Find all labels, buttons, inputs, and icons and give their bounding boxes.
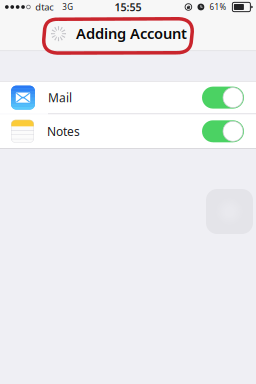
staticText: 3G — [62, 2, 73, 12]
button[interactable]: Mail — [0, 82, 256, 114]
staticText: Mail — [48, 90, 72, 105]
button[interactable]: Mail on — [202, 87, 256, 109]
staticText: Adding Account — [76, 23, 187, 43]
staticText: Notes — [47, 123, 80, 139]
button[interactable]: Notes on — [202, 120, 256, 142]
staticText: 15:55 — [114, 0, 141, 14]
staticText: dtac — [35, 1, 53, 13]
button[interactable]: Notes — [0, 114, 256, 148]
staticText: 61% — [209, 2, 226, 12]
